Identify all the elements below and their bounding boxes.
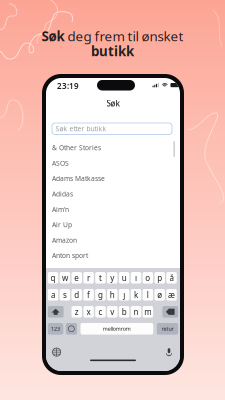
button[interactable]: Anton sport	[46, 248, 180, 263]
staticText: g	[98, 289, 103, 300]
button[interactable]: r	[83, 272, 94, 284]
staticText: 123	[51, 325, 60, 332]
staticText: Anton sport	[52, 251, 88, 260]
button[interactable]: Adidas	[46, 186, 180, 202]
button[interactable]: k	[131, 289, 141, 301]
button[interactable]: i	[131, 272, 141, 284]
staticText: å	[170, 272, 174, 283]
button[interactable]: f	[83, 289, 94, 301]
button[interactable]: Dictate	[165, 347, 172, 356]
staticText: x	[87, 306, 91, 317]
staticText: Amazon	[52, 236, 77, 245]
button[interactable]: c	[95, 306, 106, 318]
button[interactable]: x	[83, 306, 94, 318]
staticText: s	[63, 289, 67, 300]
button[interactable]: æ	[166, 289, 177, 301]
staticText: i	[135, 272, 137, 283]
button[interactable]: z	[71, 306, 82, 318]
button[interactable]: e	[71, 272, 82, 284]
staticText: l	[147, 289, 149, 300]
button[interactable]: o	[143, 272, 153, 284]
staticText: t	[99, 272, 102, 283]
button[interactable]: w	[60, 272, 70, 284]
staticText: Air Up	[52, 220, 72, 229]
staticText: & Other Stories	[52, 143, 101, 152]
button[interactable]: y	[107, 272, 117, 284]
staticText: z	[75, 306, 79, 317]
button[interactable]: Amazon	[46, 232, 180, 248]
staticText: v	[110, 306, 114, 317]
staticText: a	[51, 289, 55, 300]
button[interactable]: a	[48, 289, 58, 301]
staticText: h	[110, 289, 115, 300]
staticText: u	[122, 272, 127, 283]
button[interactable]: m	[143, 306, 153, 318]
staticText: 23:19	[57, 81, 79, 91]
staticText: Søk etter butikk	[55, 124, 106, 133]
staticText: o	[145, 272, 150, 283]
staticText: r	[87, 272, 90, 283]
button[interactable]: v	[107, 306, 117, 318]
staticText: Søk deg frem til ønsket	[41, 27, 183, 45]
staticText: p	[157, 272, 162, 283]
staticText: ASOS	[52, 159, 69, 168]
staticText: j	[123, 289, 125, 300]
button[interactable]: Aim'n	[46, 202, 180, 217]
button[interactable]: l	[143, 289, 153, 301]
button[interactable]: g	[95, 289, 106, 301]
staticText: Søk	[106, 98, 119, 109]
button[interactable]: mellomrom	[80, 323, 153, 335]
button[interactable]: s	[60, 289, 70, 301]
button[interactable]: Shift	[48, 306, 64, 318]
staticText: Adidas	[52, 189, 73, 198]
staticText: æ	[168, 289, 175, 300]
staticText: butikk	[91, 42, 134, 60]
button[interactable]: Adams Matkasse	[46, 171, 180, 186]
staticText: e	[74, 272, 79, 283]
staticText: retur	[161, 325, 173, 332]
button[interactable]: u	[119, 272, 129, 284]
staticText: d	[74, 289, 79, 300]
button[interactable]: n	[131, 306, 141, 318]
staticText: c	[98, 306, 102, 317]
button[interactable]: å	[166, 272, 177, 284]
staticText: Adams Matkasse	[52, 174, 105, 183]
button[interactable]: b	[119, 306, 129, 318]
button[interactable]: p	[154, 272, 165, 284]
button[interactable]: t	[95, 272, 106, 284]
button[interactable]: d	[71, 289, 82, 301]
staticText: f	[87, 289, 90, 300]
button[interactable]: Emoji	[66, 323, 77, 335]
staticText: b	[122, 306, 127, 317]
staticText: q	[50, 272, 55, 283]
staticText: Aim'n	[52, 205, 69, 214]
button[interactable]: ASOS	[46, 155, 180, 171]
button[interactable]: q	[48, 272, 58, 284]
staticText: n	[133, 306, 138, 317]
button[interactable]: ø	[154, 289, 165, 301]
button[interactable]: & Other Stories	[46, 140, 180, 155]
button[interactable]: Delete	[162, 306, 178, 318]
button[interactable]: 123	[48, 323, 63, 335]
staticText: m	[144, 306, 151, 317]
button[interactable]: Air Up	[46, 217, 180, 232]
button[interactable]: j	[119, 289, 129, 301]
staticText: k	[134, 289, 138, 300]
button[interactable]: retur	[157, 323, 178, 335]
button[interactable]: Change keyboard language	[52, 348, 61, 356]
staticText: ø	[157, 289, 162, 300]
staticText: w	[62, 272, 68, 283]
button[interactable]: h	[107, 289, 117, 301]
staticText: y	[110, 272, 114, 283]
staticText: mellomrom	[103, 325, 131, 332]
